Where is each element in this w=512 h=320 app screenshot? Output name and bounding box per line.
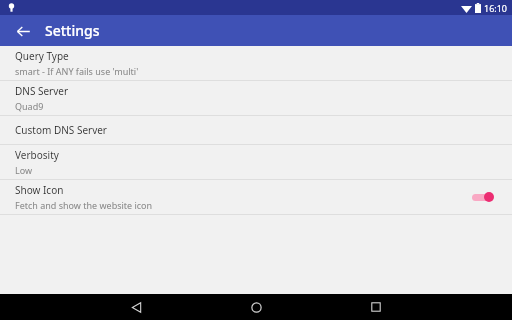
button[interactable]: Back — [11, 19, 35, 43]
button[interactable]: Verbosity — [0, 145, 512, 179]
staticText: DNS Server — [15, 84, 69, 98]
staticText: Quad9 — [15, 100, 44, 112]
button[interactable]: Recent apps — [363, 294, 389, 320]
staticText: Query Type — [15, 49, 69, 63]
staticText: 16:10 — [484, 2, 508, 14]
button[interactable]: Custom DNS Server — [0, 116, 512, 144]
staticText: Custom DNS Server — [15, 123, 107, 137]
staticText: Verbosity — [15, 148, 59, 162]
staticText: Settings — [45, 21, 100, 40]
button[interactable]: Show Icon toggle — [471, 187, 497, 207]
button[interactable]: Back — [123, 294, 149, 320]
button[interactable]: DNS Server — [0, 81, 512, 115]
staticText: smart - If ANY fails use 'multi' — [15, 65, 139, 77]
button[interactable]: Query Type — [0, 46, 512, 80]
button[interactable]: Home — [243, 294, 269, 320]
staticText: Show Icon — [15, 183, 64, 197]
staticText: Fetch and show the website icon — [15, 199, 153, 211]
staticText: Low — [15, 164, 33, 176]
button[interactable]: Show Icon — [0, 180, 512, 214]
